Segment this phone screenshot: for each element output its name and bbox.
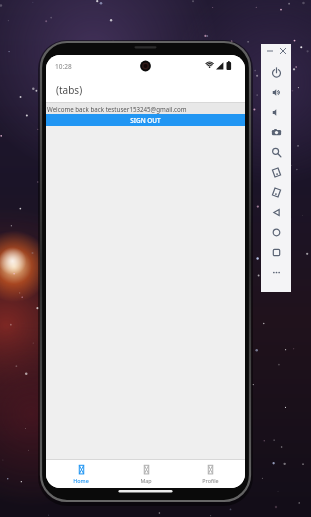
button[interactable]: Home <box>51 460 111 488</box>
staticText: SIGN OUT <box>130 116 161 125</box>
button[interactable]: Screenshot <box>261 122 291 142</box>
button[interactable]: Volume up <box>261 82 291 102</box>
button[interactable]: Zoom <box>261 142 291 162</box>
button[interactable]: Volume down <box>261 102 291 122</box>
button[interactable]: Minimize <box>265 46 274 55</box>
staticText: (tabs) <box>56 83 83 97</box>
button[interactable]: Close <box>278 46 287 55</box>
staticText: Profile <box>202 477 219 484</box>
button[interactable]: Power <box>261 62 291 82</box>
staticText: Home <box>73 477 89 484</box>
button[interactable]: More <box>261 262 291 282</box>
staticText: 10:28 <box>55 62 72 71</box>
button[interactable]: Profile <box>180 460 240 488</box>
button[interactable]: Overview <box>261 242 291 262</box>
staticText: Map <box>140 477 152 484</box>
button[interactable]: SIGN OUT <box>46 114 245 126</box>
button[interactable]: Map <box>116 460 176 488</box>
staticText: Welcome back back testuser153245@gmail.c… <box>47 105 187 113</box>
button[interactable]: Home <box>261 222 291 242</box>
button[interactable]: Back <box>261 202 291 222</box>
button[interactable]: Rotate left <box>261 162 291 182</box>
button[interactable]: Rotate right <box>261 182 291 202</box>
